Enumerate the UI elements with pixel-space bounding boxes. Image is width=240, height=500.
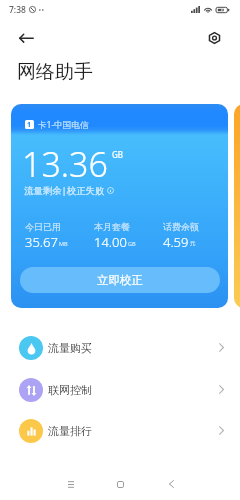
staticText: 4.59 <box>163 233 189 251</box>
button[interactable] <box>234 104 240 308</box>
button[interactable]: Home <box>104 468 136 500</box>
staticText: 流量剩余|校正失败 <box>24 184 105 197</box>
button[interactable]: Back <box>155 468 187 500</box>
button[interactable]: Settings <box>199 23 229 53</box>
staticText: 13.36 <box>22 141 108 187</box>
button[interactable]: Back <box>11 22 41 52</box>
staticText: 1 <box>27 120 32 129</box>
staticText: 卡1-中国电信 <box>38 119 89 129</box>
staticText: 35.67 <box>25 233 58 251</box>
staticText: 流量购买 <box>48 341 92 355</box>
staticText: 本月套餐 <box>94 221 130 232</box>
button[interactable]: 联网控制 <box>0 369 240 410</box>
button[interactable]: Recent apps <box>55 468 87 500</box>
staticText: MB <box>59 240 68 247</box>
button[interactable]: 立即校正 <box>20 267 220 293</box>
staticText: 立即校正 <box>97 273 143 287</box>
staticText: 话费余额 <box>163 221 199 232</box>
staticText: 14.00 <box>94 233 127 251</box>
button[interactable]: 流量排行 <box>0 410 240 451</box>
staticText: 7:38 <box>9 4 26 16</box>
button[interactable]: 流量购买 <box>0 327 240 368</box>
staticText: 联网控制 <box>48 383 92 397</box>
staticText: GB <box>128 240 136 247</box>
staticText: 今日已用 <box>25 221 61 232</box>
staticText: 网络助手 <box>17 60 93 84</box>
staticText: GB <box>112 149 124 160</box>
staticText: 元 <box>190 240 196 247</box>
staticText: 流量排行 <box>48 424 92 438</box>
